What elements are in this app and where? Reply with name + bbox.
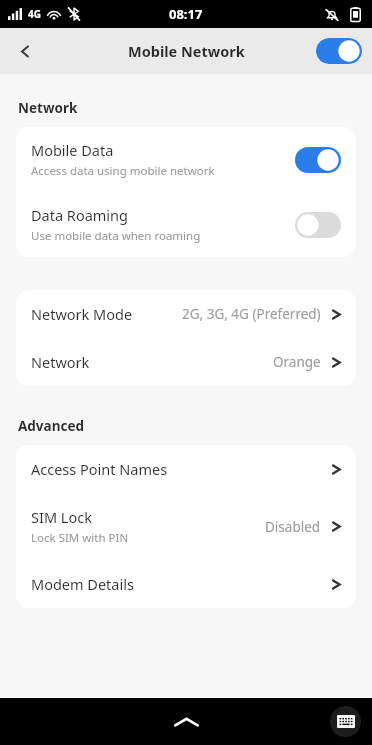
staticText: 4G — [28, 7, 41, 21]
staticText: Orange — [273, 353, 321, 371]
button[interactable]: Network Mode — [16, 290, 356, 338]
staticText: 08:17 — [169, 5, 203, 23]
staticText: Modem Details — [31, 574, 134, 594]
staticText: 2G, 3G, 4G (Preferred) — [182, 305, 321, 323]
staticText: Disabled — [265, 518, 321, 536]
staticText: Data Roaming — [31, 205, 128, 225]
staticText: Network — [31, 352, 90, 372]
button[interactable]: Back — [4, 30, 46, 72]
button[interactable]: Mobile Data — [16, 127, 356, 192]
button[interactable]: Network — [16, 338, 356, 386]
button[interactable]: Hide keyboard — [157, 701, 215, 743]
staticText: Mobile Data — [31, 140, 114, 160]
button[interactable]: Access Point Names — [16, 445, 356, 493]
staticText: Lock SIM with PIN — [31, 530, 129, 546]
button[interactable]: Data Roaming — [16, 192, 356, 257]
staticText: Access data using mobile network — [31, 163, 215, 179]
button[interactable]: Mobile network master switch — [316, 38, 362, 64]
button[interactable]: Modem Details — [16, 560, 356, 608]
staticText: Use mobile data when roaming — [31, 228, 201, 244]
button[interactable]: Switch keyboard — [330, 706, 361, 737]
staticText: Access Point Names — [31, 459, 168, 479]
button[interactable]: SIM Lock — [16, 493, 356, 560]
staticText: SIM Lock — [31, 507, 92, 527]
staticText: Mobile Network — [128, 41, 245, 61]
staticText: Network Mode — [31, 304, 133, 324]
staticText: Advanced — [18, 417, 85, 435]
staticText: Network — [18, 99, 78, 117]
